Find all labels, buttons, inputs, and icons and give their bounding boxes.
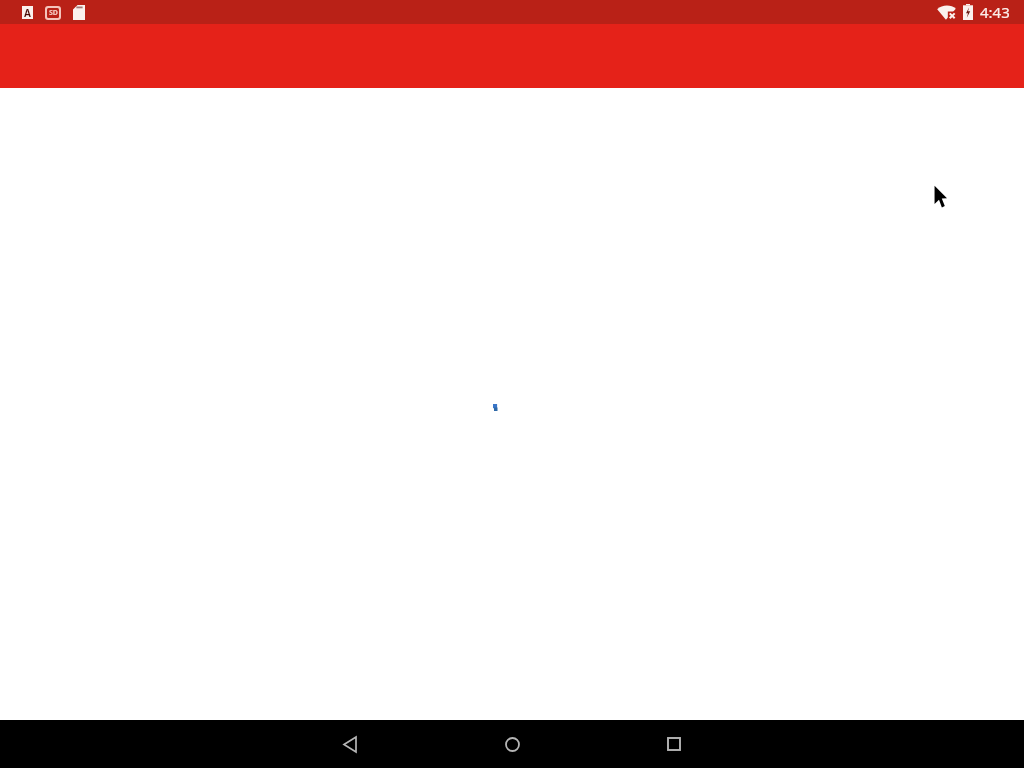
button[interactable]: Back	[314, 720, 386, 768]
button[interactable]: Home	[476, 720, 548, 768]
button[interactable]: Recent apps	[638, 720, 710, 768]
staticText: SD	[49, 8, 58, 18]
staticText: 4:43	[980, 2, 1010, 22]
staticText: A	[24, 6, 31, 19]
